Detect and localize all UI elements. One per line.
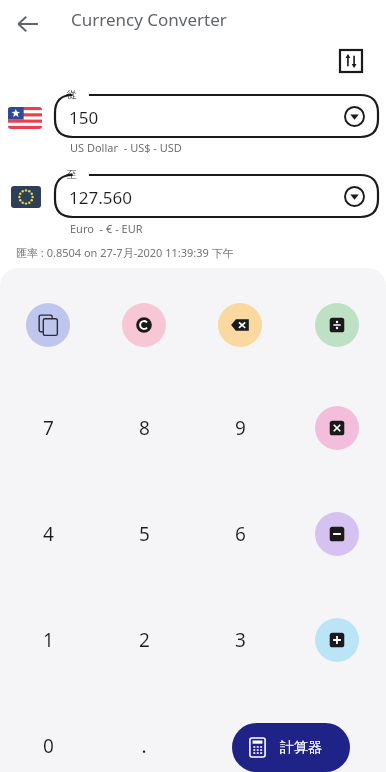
button[interactable]: Divide <box>315 303 359 347</box>
button[interactable]: 3 <box>206 612 274 668</box>
staticText: 3 <box>235 627 246 653</box>
button[interactable]: Select currency <box>341 103 367 129</box>
staticText: 9 <box>235 415 246 441</box>
button[interactable]: 計算器 <box>232 723 350 772</box>
staticText: 至 <box>67 168 77 181</box>
button[interactable]: 6 <box>206 506 274 562</box>
button[interactable]: Plus <box>315 618 359 662</box>
button[interactable]: 1 <box>14 612 82 668</box>
button[interactable]: 9 <box>206 400 274 456</box>
button[interactable]: Copy <box>26 303 70 347</box>
button[interactable]: 從 <box>55 95 378 137</box>
button[interactable]: . <box>110 718 178 772</box>
button[interactable]: 4 <box>14 506 82 562</box>
staticText: 計算器 <box>280 739 322 757</box>
staticText: . <box>141 733 147 759</box>
staticText: 2 <box>139 627 150 653</box>
staticText: 6 <box>235 521 246 547</box>
button[interactable]: Multiply <box>315 406 359 450</box>
button[interactable]: 至 <box>55 175 378 217</box>
staticText: 150 <box>69 106 99 129</box>
button[interactable]: Backspace <box>218 303 262 347</box>
staticText: Currency Converter <box>71 8 227 31</box>
button[interactable]: 0 <box>14 718 82 772</box>
button[interactable]: 2 <box>110 612 178 668</box>
button[interactable]: Euro flag <box>11 186 41 208</box>
staticText: 0 <box>43 733 54 759</box>
button[interactable]: 8 <box>110 400 178 456</box>
button[interactable]: Back <box>8 4 48 44</box>
staticText: 127.560 <box>69 186 132 209</box>
staticText: Euro - € - EUR <box>70 221 143 236</box>
button[interactable]: 5 <box>110 506 178 562</box>
staticText: 從 <box>67 88 77 101</box>
staticText: 4 <box>43 521 54 547</box>
staticText: 1 <box>43 627 54 653</box>
staticText: US Dollar - US$ - USD <box>70 140 182 155</box>
button[interactable]: Select currency <box>341 183 367 209</box>
staticText: 7 <box>43 415 54 441</box>
staticText: 匯率 : 0.8504 on 27-7月-2020 11:39:39 下午 <box>16 245 234 260</box>
staticText: 8 <box>139 415 150 441</box>
button[interactable]: Swap currencies <box>336 46 366 76</box>
button[interactable]: Minus <box>315 512 359 556</box>
button[interactable]: US Dollar flag <box>8 107 42 129</box>
button[interactable]: Clear <box>122 303 166 347</box>
staticText: 5 <box>139 521 150 547</box>
button[interactable]: 7 <box>14 400 82 456</box>
